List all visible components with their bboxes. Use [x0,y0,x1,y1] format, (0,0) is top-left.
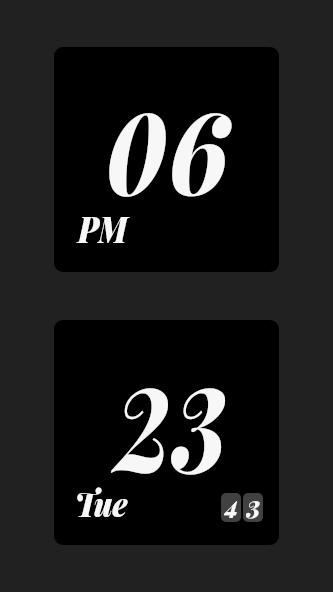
staticText: 23 [115,346,228,502]
staticText: 4 [224,493,238,522]
button[interactable]: Seconds 43 [221,493,263,522]
staticText: 3 [246,493,260,522]
button[interactable]: 23 [54,320,279,545]
staticText: 06 [106,73,233,224]
staticText: Tue [75,480,128,525]
staticText: PM [78,203,128,252]
button[interactable]: 06 [54,47,279,272]
